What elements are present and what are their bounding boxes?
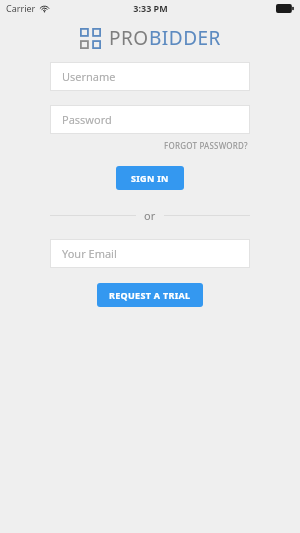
staticText: PRO	[109, 25, 149, 51]
other: ProBidder logo	[80, 28, 101, 49]
button[interactable]: FORGOT PASSWORD?	[162, 138, 250, 153]
staticText: Your Email	[62, 246, 117, 261]
staticText: 3:33 PM	[133, 2, 168, 14]
staticText: Carrier	[6, 2, 36, 14]
staticText: FORGOT PASSWORD?	[164, 140, 248, 151]
button[interactable]: Username	[50, 62, 250, 91]
staticText: or	[144, 208, 156, 223]
button[interactable]: REQUEST A TRIAL	[97, 283, 203, 307]
button[interactable]: SIGN IN	[116, 166, 184, 190]
button[interactable]: Your Email	[50, 239, 250, 268]
staticText: Username	[62, 69, 116, 84]
staticText: REQUEST A TRIAL	[109, 289, 191, 301]
staticText: SIGN IN	[131, 172, 169, 184]
button[interactable]: Password	[50, 105, 250, 134]
staticText: BIDDER	[149, 25, 221, 51]
staticText: Password	[62, 112, 112, 127]
